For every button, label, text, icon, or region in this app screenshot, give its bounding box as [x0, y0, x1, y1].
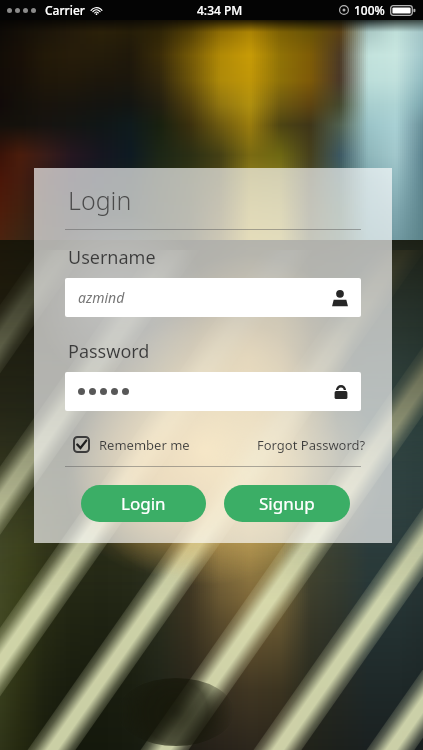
staticText: 4:34 PM — [197, 2, 243, 18]
staticText: Carrier — [45, 2, 85, 18]
staticText: Username — [68, 245, 156, 270]
staticText: Login — [121, 492, 166, 515]
button[interactable]: Login — [81, 485, 206, 522]
staticText: Remember me — [99, 436, 190, 454]
staticText: Login — [68, 183, 132, 217]
button[interactable]: Forgot Password? — [257, 436, 366, 454]
other: User — [331, 289, 349, 307]
button[interactable]: Password — [65, 372, 361, 411]
staticText: Signup — [259, 492, 315, 515]
staticText: azmind — [78, 288, 125, 307]
button[interactable]: azmind — [65, 278, 361, 317]
staticText: 100% — [354, 2, 385, 18]
other: Password — [333, 384, 349, 400]
button[interactable]: Signup — [224, 485, 350, 522]
button[interactable]: Remember me — [67, 432, 190, 457]
staticText: Password — [68, 339, 150, 364]
